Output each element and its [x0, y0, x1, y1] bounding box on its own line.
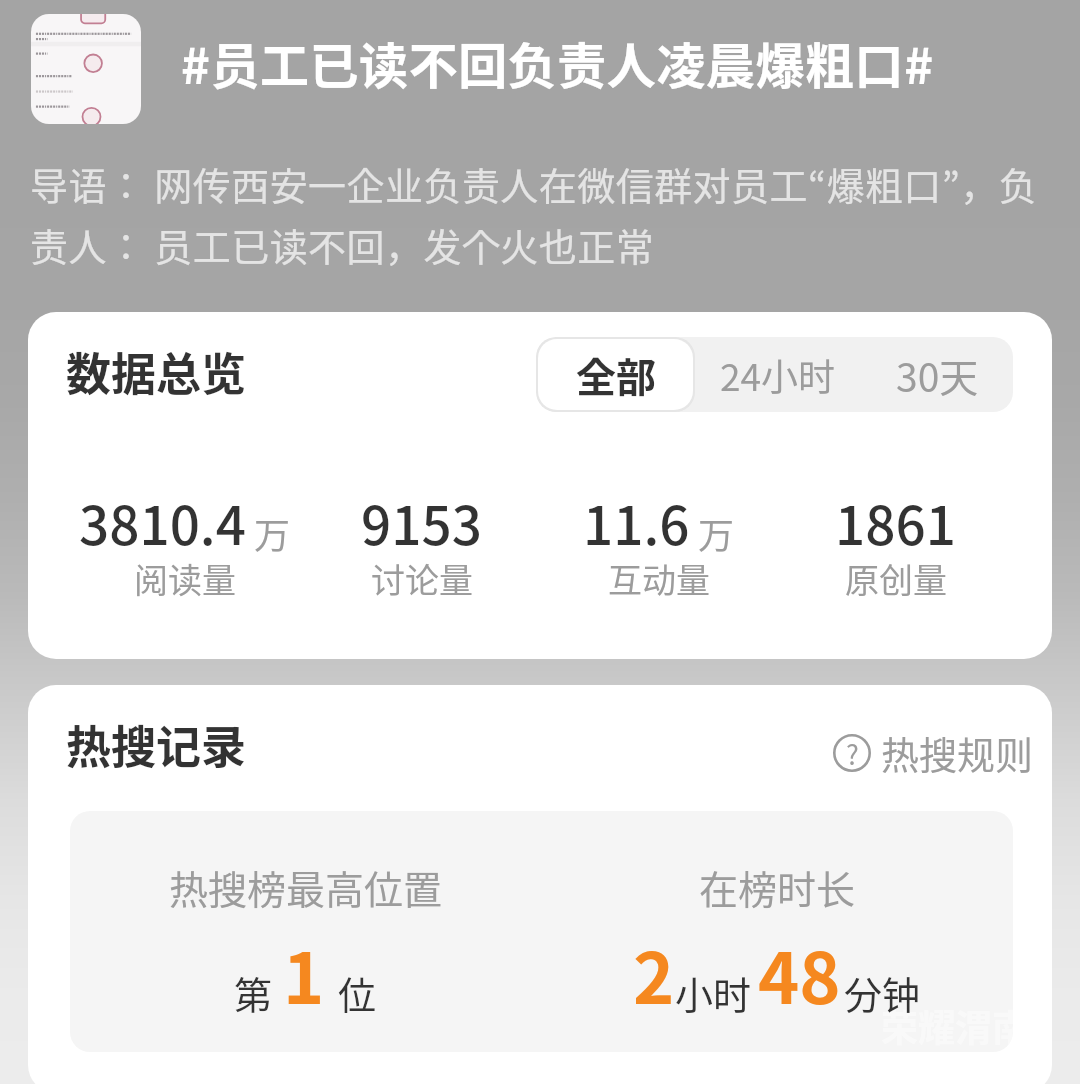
- staticText: 热搜规则: [881, 725, 1034, 780]
- staticText: 万: [698, 507, 735, 559]
- button[interactable]: Topic image: [31, 14, 141, 124]
- staticText: 导语∶ 网传西安一企业负责人在微信群对员工“爆粗口”，负责人∶ 员工已读不回，发…: [30, 156, 1054, 272]
- staticText: 11.6: [583, 484, 690, 561]
- staticText: 1861: [835, 484, 956, 561]
- staticText: 阅读量: [134, 554, 236, 603]
- button[interactable]: 11.6: [540, 484, 777, 610]
- staticText: 位: [338, 965, 377, 1020]
- staticText: 讨论量: [371, 554, 473, 603]
- staticText: 互动量: [608, 554, 710, 603]
- staticText: 小时: [675, 965, 752, 1020]
- staticText: 全部: [576, 346, 656, 404]
- staticText: 24小时: [720, 348, 836, 402]
- button[interactable]: 9153: [303, 484, 540, 610]
- staticText: #员工已读不回负责人凌晨爆粗口#: [181, 27, 934, 98]
- staticText: 第: [234, 965, 273, 1020]
- staticText: 数据总览: [66, 339, 247, 404]
- staticText: 30天: [896, 347, 979, 403]
- staticText: 1: [283, 923, 325, 1024]
- staticText: 热搜记录: [66, 712, 247, 777]
- staticText: 9153: [361, 484, 482, 561]
- button[interactable]: 热搜规则: [833, 725, 1034, 780]
- staticText: 48: [758, 923, 841, 1024]
- button[interactable]: 30天: [861, 337, 1013, 412]
- staticText: 热搜榜最高位置: [169, 859, 443, 915]
- button[interactable]: #员工已读不回负责人凌晨爆粗口#: [170, 14, 942, 124]
- staticText: 分钟: [844, 965, 921, 1020]
- staticText: 2: [633, 923, 675, 1024]
- button[interactable]: 3810.4: [66, 484, 303, 610]
- staticText: ?: [846, 734, 859, 772]
- staticText: 荣耀渭南: [881, 999, 1013, 1052]
- staticText: 在榜时长: [699, 859, 856, 915]
- staticText: 原创量: [845, 554, 947, 603]
- staticText: 3810.4: [79, 484, 246, 561]
- button[interactable]: 24小时: [695, 337, 861, 412]
- button[interactable]: 1861: [777, 484, 1014, 610]
- staticText: 万: [254, 507, 291, 559]
- button[interactable]: 全部: [538, 339, 693, 410]
